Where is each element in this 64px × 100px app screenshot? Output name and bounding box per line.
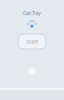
staticText: Start [26,38,38,45]
staticText: Cat Toy [23,9,41,17]
button[interactable]: Toggle [28,68,35,75]
button[interactable]: Start [18,34,46,49]
